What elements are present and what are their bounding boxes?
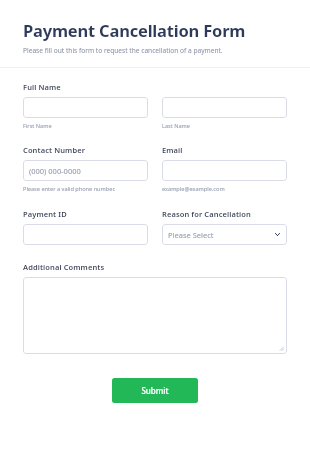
staticText: example@example.com — [162, 185, 225, 193]
staticText: Payment Cancellation Form — [23, 19, 246, 41]
staticText: Last Name — [162, 122, 190, 130]
staticText: Please Select — [168, 230, 214, 240]
staticText: Payment ID — [23, 209, 67, 219]
staticText: Please fill out this form to request the… — [23, 46, 223, 55]
staticText: Additional Comments — [23, 262, 105, 272]
staticText: (000) 000-0000 — [29, 166, 81, 176]
staticText: Please enter a valid phone number. — [23, 185, 116, 193]
staticText: Full Name — [23, 82, 61, 92]
button[interactable]: Contact Number — [23, 160, 148, 181]
button[interactable]: First Name — [23, 97, 148, 118]
staticText: Reason for Cancellation — [162, 209, 251, 219]
button[interactable]: Additional Comments — [23, 277, 287, 354]
staticText: Contact Number — [23, 145, 86, 155]
button[interactable]: Last Name — [162, 97, 287, 118]
button[interactable]: Submit — [112, 378, 198, 403]
button[interactable]: Payment ID — [23, 224, 148, 245]
staticText: First Name — [23, 122, 52, 130]
button[interactable]: Email — [162, 160, 287, 181]
button[interactable]: Reason for Cancellation — [162, 224, 287, 245]
staticText: Submit — [141, 385, 169, 396]
staticText: Email — [162, 145, 183, 155]
